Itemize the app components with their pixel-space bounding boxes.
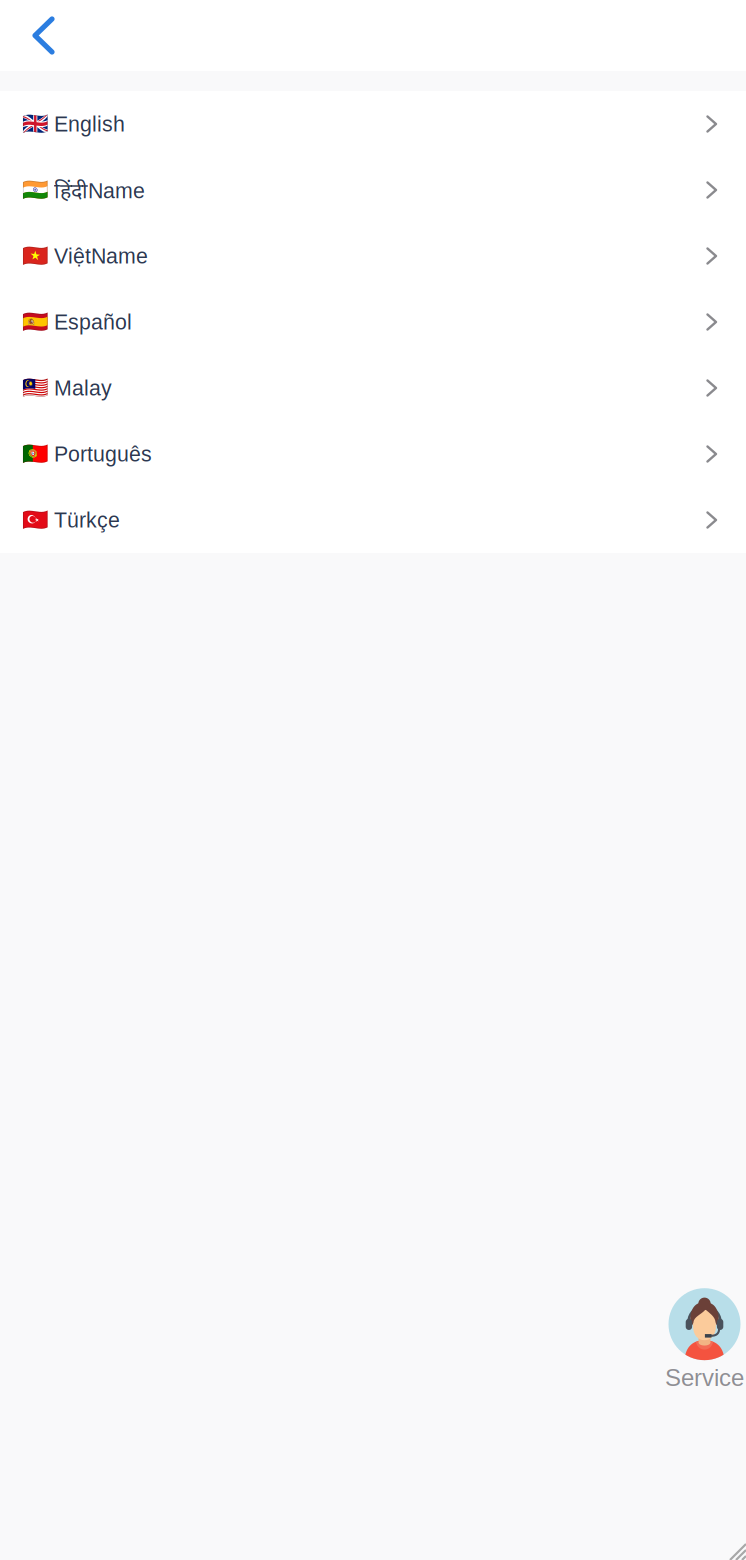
staticText: English — [54, 112, 125, 136]
staticText: 🇻🇳 — [22, 243, 49, 268]
staticText: 🇪🇸 — [22, 309, 49, 334]
button[interactable]: 🇲🇾 — [0, 355, 746, 421]
staticText: 🇲🇾 — [22, 375, 49, 400]
staticText: ViệtName — [54, 244, 148, 268]
staticText: Service — [665, 1364, 744, 1391]
button[interactable]: Back — [0, 0, 86, 71]
staticText: 🇮🇳 — [22, 177, 49, 202]
button[interactable]: 🇮🇳 — [0, 157, 746, 223]
staticText: 🇹🇷 — [22, 507, 49, 532]
button[interactable]: 🇪🇸 — [0, 289, 746, 355]
staticText: हिंदीName — [54, 175, 145, 205]
staticText: Português — [54, 442, 152, 466]
button[interactable]: 🇻🇳 — [0, 223, 746, 289]
staticText: 🇬🇧 — [22, 111, 49, 136]
button[interactable]: 🇵🇹 — [0, 421, 746, 487]
staticText: Español — [54, 310, 132, 334]
button[interactable]: Customer Service — [665, 1288, 744, 1391]
staticText: Türkçe — [54, 508, 120, 532]
staticText: 🇵🇹 — [22, 441, 49, 466]
button[interactable]: 🇹🇷 — [0, 487, 746, 553]
button[interactable]: 🇬🇧 — [0, 91, 746, 157]
staticText: Malay — [54, 376, 112, 400]
